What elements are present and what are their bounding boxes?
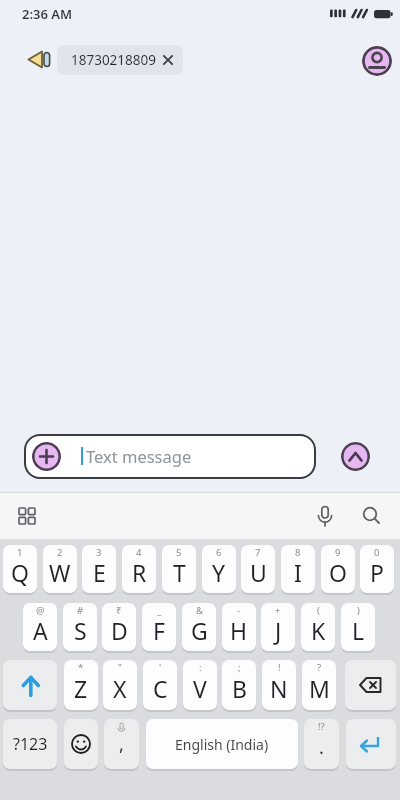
staticText: V	[193, 673, 207, 704]
staticText: J	[275, 615, 282, 646]
button[interactable]: X	[103, 660, 137, 710]
staticText: C	[153, 673, 168, 704]
staticText: !?	[318, 720, 325, 733]
button[interactable]	[64, 719, 98, 769]
button[interactable]: Y	[202, 545, 236, 593]
staticText: :	[199, 661, 202, 674]
staticText: .	[319, 735, 324, 760]
staticText: 6	[216, 546, 222, 559]
button[interactable]	[341, 442, 370, 471]
button[interactable]: R	[122, 545, 156, 593]
staticText: -	[237, 604, 241, 617]
staticText: )	[357, 604, 360, 617]
button[interactable]	[32, 442, 61, 471]
button[interactable]: M	[302, 660, 336, 710]
button[interactable]: N	[262, 660, 296, 710]
button[interactable]: .	[304, 719, 339, 769]
staticText: ,	[119, 732, 124, 757]
button[interactable]: U	[241, 545, 275, 593]
button[interactable]: S	[63, 603, 97, 651]
staticText: ?	[317, 661, 322, 674]
button[interactable]	[345, 660, 396, 710]
staticText: D	[111, 615, 128, 646]
button[interactable]: L	[341, 603, 375, 651]
staticText: Y	[212, 557, 226, 588]
button[interactable]: C	[143, 660, 177, 710]
staticText: +	[275, 604, 281, 617]
staticText: ?123	[13, 733, 48, 755]
staticText: 8	[295, 546, 301, 559]
staticText: "	[118, 661, 122, 674]
staticText: W	[49, 557, 71, 588]
button[interactable]: I	[281, 545, 315, 593]
staticText: English (India)	[175, 735, 269, 754]
staticText: 18730218809	[71, 51, 156, 69]
button[interactable]	[146, 719, 298, 769]
button[interactable]: G	[182, 603, 216, 651]
button[interactable]: D	[102, 603, 136, 651]
button[interactable]	[346, 719, 396, 769]
button[interactable]: Q	[3, 545, 37, 593]
staticText: R	[132, 557, 147, 588]
staticText: T	[173, 557, 186, 588]
button[interactable]: ,	[104, 719, 139, 769]
button[interactable]: W	[43, 545, 77, 593]
staticText: 1	[17, 546, 23, 559]
button[interactable]: K	[301, 603, 335, 651]
staticText: L	[352, 615, 365, 646]
staticText: K	[311, 615, 326, 646]
staticText: 2:36 AM	[22, 5, 73, 23]
button[interactable]	[362, 506, 382, 526]
button[interactable]	[362, 46, 392, 76]
button[interactable]: F	[142, 603, 176, 651]
staticText: Z	[74, 673, 88, 704]
staticText: Q	[11, 557, 29, 588]
button[interactable]: A	[23, 603, 57, 651]
button[interactable]	[315, 505, 335, 529]
staticText: M	[309, 673, 330, 704]
button[interactable]: B	[222, 660, 256, 710]
button[interactable]	[18, 507, 36, 525]
staticText: '	[159, 661, 162, 674]
button[interactable]	[26, 48, 52, 72]
staticText: P	[370, 557, 384, 588]
button[interactable]: Z	[64, 660, 98, 710]
staticText: !	[278, 661, 281, 674]
button[interactable]: E	[82, 545, 116, 593]
staticText: G	[191, 615, 208, 646]
staticText: O	[329, 557, 347, 588]
staticText: I	[294, 557, 302, 588]
staticText: _	[157, 604, 162, 617]
staticText: H	[230, 615, 248, 646]
button[interactable]: H	[222, 603, 256, 651]
button[interactable]: O	[321, 545, 355, 593]
staticText: (	[317, 604, 320, 617]
staticText: Text message	[86, 445, 192, 467]
staticText: N	[270, 673, 288, 704]
button[interactable]: V	[183, 660, 217, 710]
staticText: 0	[374, 546, 380, 559]
staticText: #	[77, 604, 84, 617]
staticText: F	[153, 615, 165, 646]
staticText: 5	[176, 546, 182, 559]
button[interactable]: 18730218809	[57, 45, 183, 75]
staticText: ₹	[116, 604, 122, 617]
staticText: B	[232, 673, 247, 704]
staticText: 9	[335, 546, 341, 559]
staticText: 7	[255, 546, 261, 559]
staticText: U	[250, 557, 267, 588]
staticText: *	[78, 661, 84, 674]
staticText: 2	[57, 546, 63, 559]
staticText: ;	[238, 661, 241, 674]
button[interactable]: P	[360, 545, 394, 593]
staticText: X	[113, 673, 127, 704]
button[interactable]: J	[261, 603, 295, 651]
button[interactable]	[3, 660, 57, 710]
staticText: 4	[136, 546, 142, 559]
staticText: &	[196, 604, 203, 617]
button[interactable]: ?123	[3, 719, 57, 769]
button[interactable]: T	[162, 545, 196, 593]
staticText: S	[74, 615, 87, 646]
staticText: A	[33, 615, 48, 646]
staticText: E	[93, 557, 106, 588]
